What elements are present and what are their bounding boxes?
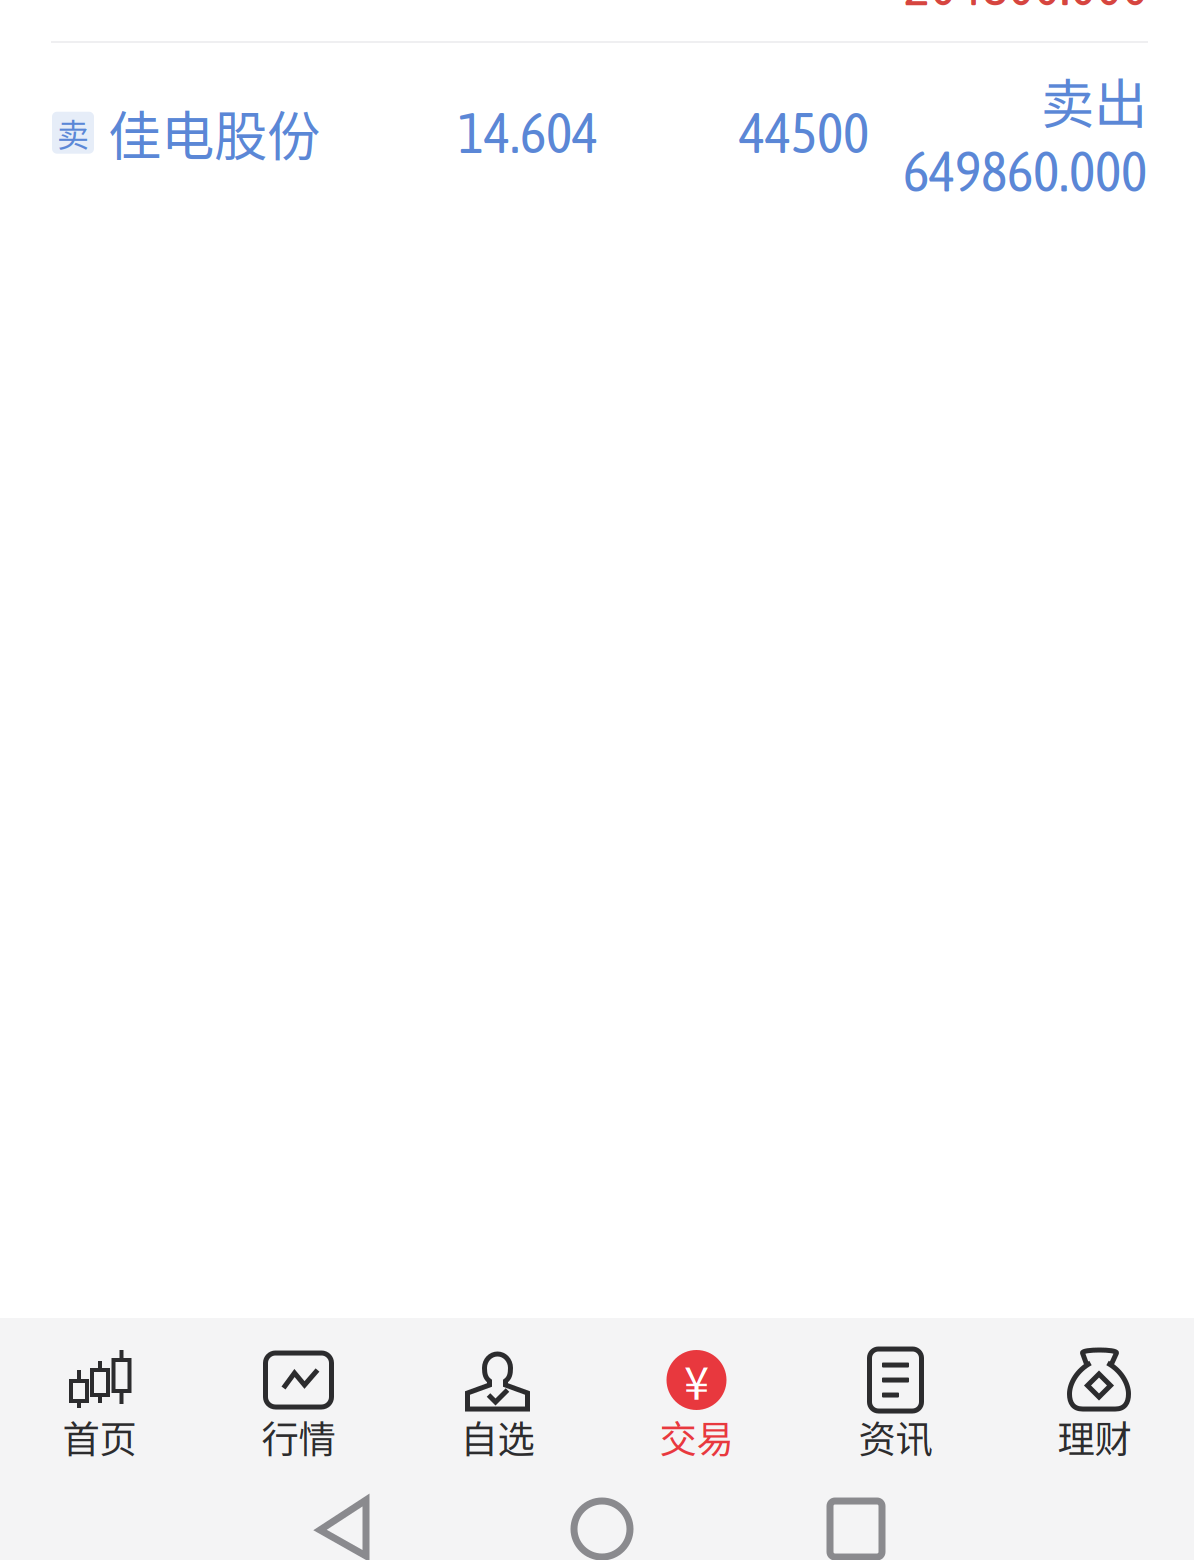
button[interactable]: ¥ bbox=[597, 1318, 796, 1480]
staticText: 资讯 bbox=[858, 1410, 932, 1464]
staticText: 行情 bbox=[261, 1410, 335, 1464]
button[interactable]: 自选 bbox=[398, 1318, 597, 1480]
staticText: 卖 bbox=[57, 109, 89, 156]
staticText: 204800.000 bbox=[904, 0, 1148, 17]
staticText: ¥ bbox=[684, 1347, 709, 1413]
staticText: 首页 bbox=[62, 1410, 136, 1464]
staticText: 理财 bbox=[1057, 1410, 1131, 1464]
button[interactable]: 卖 bbox=[0, 62, 1194, 203]
button[interactable]: 首页 bbox=[0, 1318, 199, 1480]
staticText: 649860.000 bbox=[903, 139, 1147, 203]
button[interactable]: Home bbox=[574, 1501, 630, 1557]
button[interactable]: 理财 bbox=[995, 1318, 1194, 1480]
button[interactable]: Back bbox=[318, 1498, 370, 1560]
staticText: 卖出 bbox=[1041, 62, 1147, 139]
button[interactable]: 行情 bbox=[199, 1318, 398, 1480]
button[interactable]: 资讯 bbox=[796, 1318, 995, 1480]
staticText: 14.604 bbox=[458, 101, 598, 165]
staticText: 佳电股份 bbox=[108, 94, 320, 171]
button[interactable]: Recents bbox=[830, 1501, 882, 1557]
staticText: 44500 bbox=[739, 101, 869, 165]
staticText: 交易 bbox=[659, 1410, 733, 1464]
staticText: 自选 bbox=[460, 1410, 534, 1464]
